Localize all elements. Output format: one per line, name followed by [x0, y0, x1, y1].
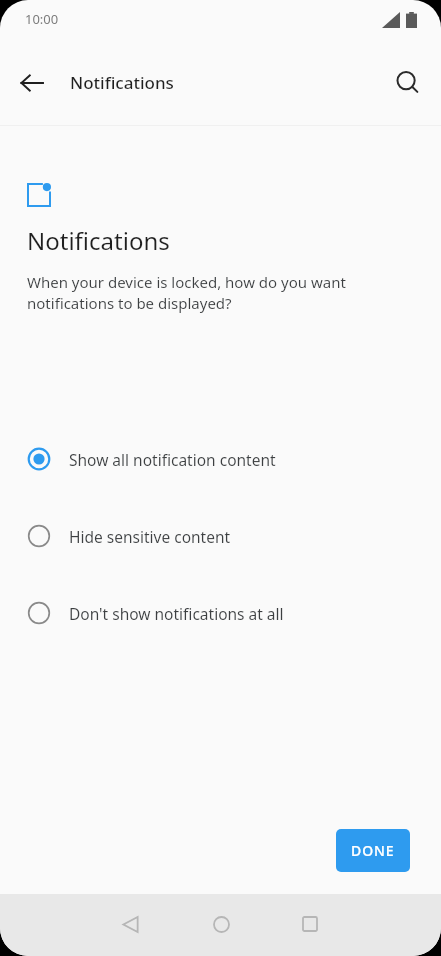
button[interactable]: Show all notification content	[0, 436, 441, 482]
button[interactable]: DONE	[336, 829, 410, 872]
button[interactable]: Home	[199, 902, 243, 946]
button[interactable]: Recent apps	[288, 902, 332, 946]
button[interactable]: Back	[108, 902, 152, 946]
button[interactable]: Search	[386, 61, 430, 105]
staticText: When your device is locked, how do you w…	[27, 272, 385, 314]
staticText: Don't show notifications at all	[69, 603, 284, 624]
button[interactable]: Don't show notifications at all	[0, 590, 441, 636]
staticText: Notifications	[70, 71, 174, 94]
button[interactable]: Hide sensitive content	[0, 513, 441, 559]
staticText: Show all notification content	[69, 449, 276, 470]
staticText: DONE	[351, 841, 395, 860]
staticText: Notifications	[27, 224, 170, 257]
staticText: 10:00	[25, 10, 59, 28]
button[interactable]: Back	[10, 61, 54, 105]
staticText: Hide sensitive content	[69, 526, 231, 547]
